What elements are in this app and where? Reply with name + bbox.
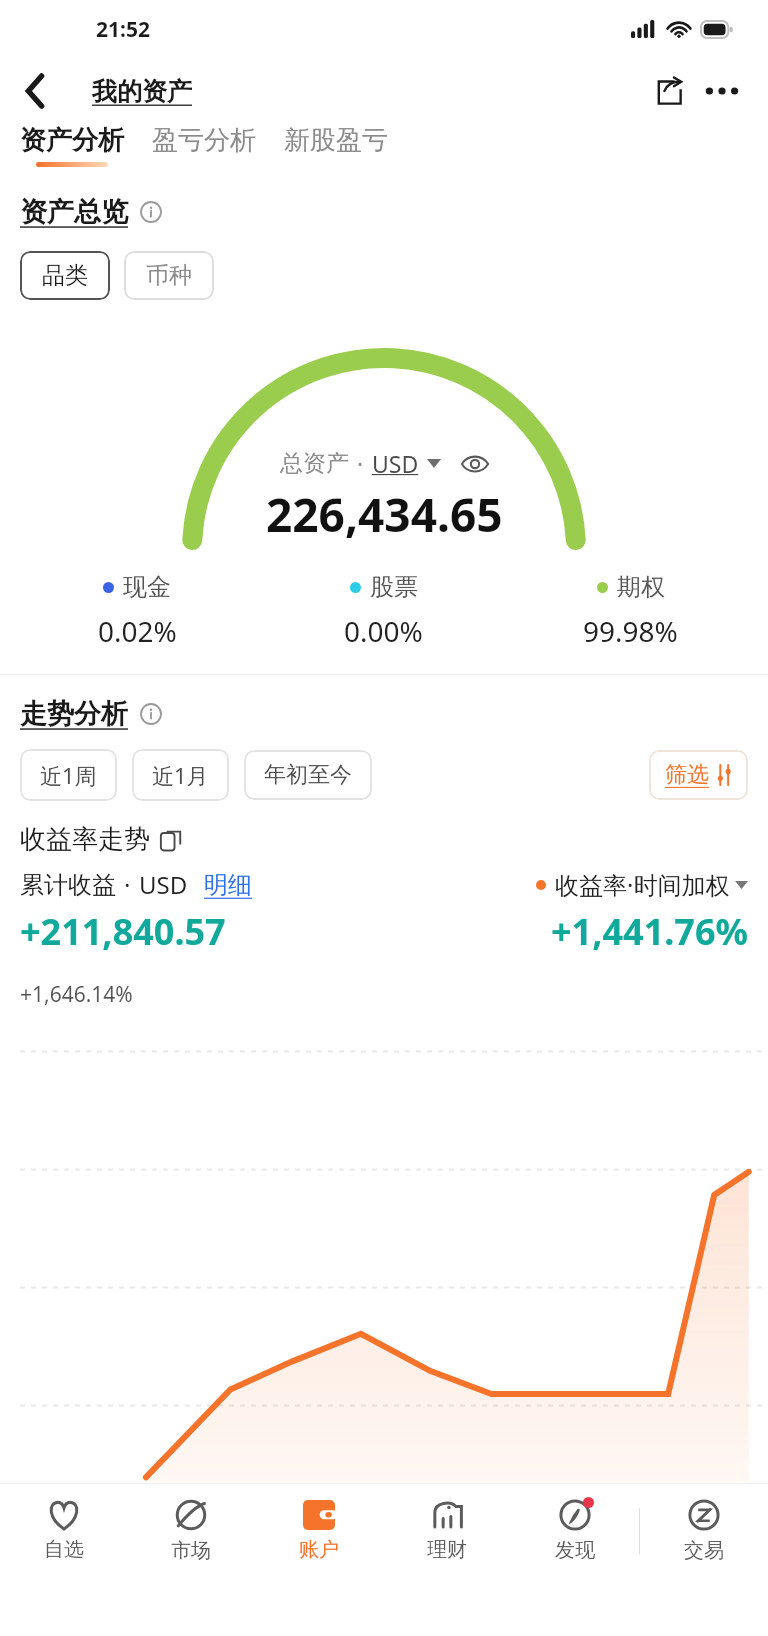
staticText: 新股盈亏 xyxy=(284,124,388,157)
staticText: 自选 xyxy=(44,1537,84,1562)
staticText: 资产总览 xyxy=(20,195,128,229)
staticText: 发现 xyxy=(555,1538,595,1563)
staticText: USD xyxy=(139,868,188,901)
button[interactable]: 品类 xyxy=(20,251,110,300)
other: Toggle visibility xyxy=(461,455,489,473)
staticText: · xyxy=(124,868,131,901)
staticText: 股票 xyxy=(370,572,418,602)
button[interactable]: 币种 xyxy=(124,251,214,300)
button[interactable]: 走势分析 xyxy=(20,697,768,731)
staticText: 总资产 xyxy=(280,449,349,478)
staticText: 近1周 xyxy=(40,760,97,790)
button[interactable]: 收益率走势 xyxy=(20,823,768,856)
button[interactable]: 股票 xyxy=(260,572,507,650)
button[interactable]: 现金 xyxy=(14,572,260,650)
staticText: · xyxy=(357,448,364,479)
button[interactable]: 新股盈亏 xyxy=(284,124,388,157)
button[interactable]: 理财 xyxy=(383,1484,511,1578)
button[interactable]: More options xyxy=(696,65,748,117)
staticText: 市场 xyxy=(171,1538,211,1563)
staticText: 币种 xyxy=(146,261,192,290)
staticText: 期权 xyxy=(617,572,665,602)
button[interactable]: 收益率·时间加权 xyxy=(536,868,748,901)
staticText: 资产分析 xyxy=(20,124,124,157)
staticText: +1,646.14% xyxy=(20,980,133,1009)
button[interactable]: 明细 xyxy=(204,870,252,900)
button[interactable]: Share xyxy=(644,65,696,117)
button[interactable]: 近1周 xyxy=(20,749,117,801)
button[interactable]: 我的资产 xyxy=(92,76,192,107)
staticText: 21:52 xyxy=(96,15,150,44)
staticText: 近1月 xyxy=(152,760,209,790)
staticText: 品类 xyxy=(42,261,88,290)
button[interactable]: 筛选 xyxy=(649,750,748,800)
button[interactable]: 总资产 xyxy=(280,448,489,479)
button[interactable]: Back xyxy=(10,65,62,117)
staticText: USD xyxy=(372,448,419,479)
button[interactable]: 交易 xyxy=(640,1484,768,1578)
staticText: 理财 xyxy=(427,1537,467,1562)
staticText: 现金 xyxy=(123,572,171,602)
staticText: 年初至今 xyxy=(264,761,352,789)
staticText: 账户 xyxy=(299,1537,339,1562)
staticText: 明细 xyxy=(204,870,252,900)
staticText: 0.02% xyxy=(98,612,177,650)
button[interactable]: 年初至今 xyxy=(244,750,372,800)
staticText: +211,840.57 xyxy=(20,907,226,956)
button[interactable]: 自选 xyxy=(0,1484,127,1578)
staticText: 交易 xyxy=(684,1538,724,1563)
staticText: 收益率·时间加权 xyxy=(555,868,730,901)
staticText: 收益率走势 xyxy=(20,823,150,856)
staticText: 99.98% xyxy=(583,612,678,650)
button[interactable]: 近1月 xyxy=(132,749,229,801)
button[interactable]: 发现 xyxy=(511,1484,639,1578)
button[interactable]: 市场 xyxy=(127,1484,255,1578)
staticText: +1,441.76% xyxy=(551,907,748,956)
staticText: 0.00% xyxy=(344,612,423,650)
staticText: 累计收益 xyxy=(20,870,116,900)
button[interactable]: 账户 xyxy=(255,1484,383,1578)
button[interactable]: 资产总览 xyxy=(20,195,768,229)
staticText: 226,434.65 xyxy=(266,483,503,546)
staticText: 走势分析 xyxy=(20,697,128,731)
button[interactable]: 期权 xyxy=(507,572,754,650)
button[interactable]: 资产分析 xyxy=(20,124,124,167)
staticText: 筛选 xyxy=(665,761,709,789)
staticText: 盈亏分析 xyxy=(152,124,256,157)
button[interactable]: 盈亏分析 xyxy=(152,124,256,157)
